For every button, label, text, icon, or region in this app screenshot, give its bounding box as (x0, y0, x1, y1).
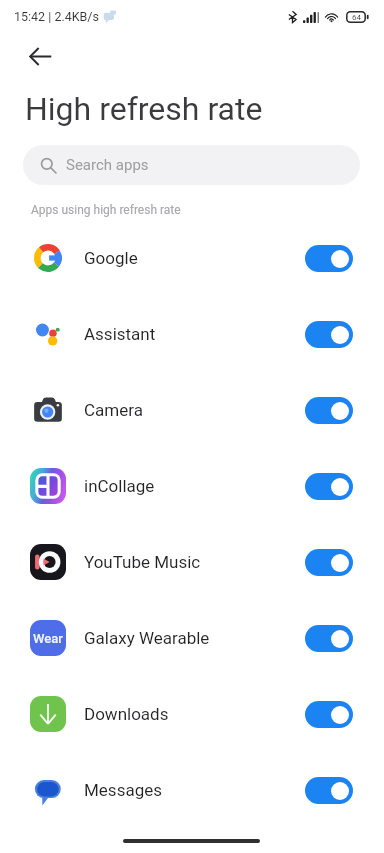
staticText: High refresh rate (25, 90, 263, 128)
button[interactable]: Messages (0, 752, 384, 828)
button[interactable]: Play Store (0, 828, 384, 853)
staticText: 15:42 | 2.4KB/s (14, 9, 99, 24)
button[interactable]: Toggle (305, 245, 353, 272)
staticText: Google (84, 248, 138, 268)
button[interactable]: Assistant (0, 296, 384, 372)
staticText: YouTube Music (84, 552, 201, 572)
button[interactable]: Toggle (305, 473, 353, 500)
button[interactable]: YouTube Music (0, 524, 384, 600)
button[interactable]: Search apps (23, 145, 360, 185)
button[interactable]: Camera (0, 372, 384, 448)
staticText: Messages (84, 780, 162, 800)
button[interactable]: Toggle (305, 397, 353, 424)
button[interactable]: Wear (0, 600, 384, 676)
button[interactable]: Toggle (305, 701, 353, 728)
staticText: inCollage (84, 476, 155, 496)
staticText: Apps using high refresh rate (31, 203, 181, 217)
staticText: Wear (33, 631, 63, 646)
button[interactable]: Toggle (305, 549, 353, 576)
staticText: Camera (84, 400, 143, 420)
staticText: Galaxy Wearable (84, 628, 210, 648)
button[interactable]: Downloads (0, 676, 384, 752)
button[interactable]: inCollage (0, 448, 384, 524)
button[interactable]: Toggle (305, 625, 353, 652)
button[interactable]: Google (0, 220, 384, 296)
button[interactable]: Toggle (305, 777, 353, 804)
button[interactable]: Back (18, 34, 62, 78)
staticText: Downloads (84, 704, 169, 724)
staticText: 64 (352, 13, 361, 22)
staticText: Search apps (66, 156, 149, 174)
staticText: Assistant (84, 324, 156, 344)
button[interactable]: Toggle (305, 321, 353, 348)
